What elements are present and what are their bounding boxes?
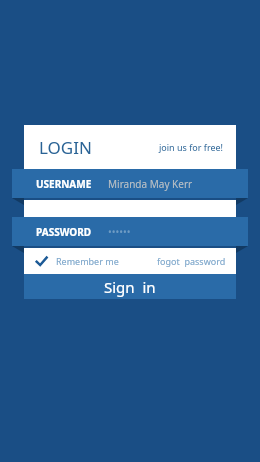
staticText: Miranda May Kerr (108, 177, 193, 191)
staticText: Sign in (104, 277, 156, 297)
button[interactable]: fogot password (155, 252, 228, 270)
staticText: PASSWORD (36, 225, 92, 239)
staticText: Remember me (56, 255, 119, 267)
button[interactable]: Remember me checked (34, 252, 121, 270)
staticText: USERNAME (36, 177, 92, 191)
other: Remember me checked (36, 256, 47, 267)
button[interactable]: Sign in (24, 274, 236, 299)
button[interactable]: Username field (12, 169, 248, 198)
staticText: join us for free! (159, 141, 224, 153)
staticText: •••••• (108, 225, 131, 239)
button[interactable]: join us for free! (157, 137, 226, 157)
staticText: fogot password (157, 255, 226, 267)
staticText: LOGIN (39, 136, 92, 159)
button[interactable]: Password field (12, 217, 248, 246)
